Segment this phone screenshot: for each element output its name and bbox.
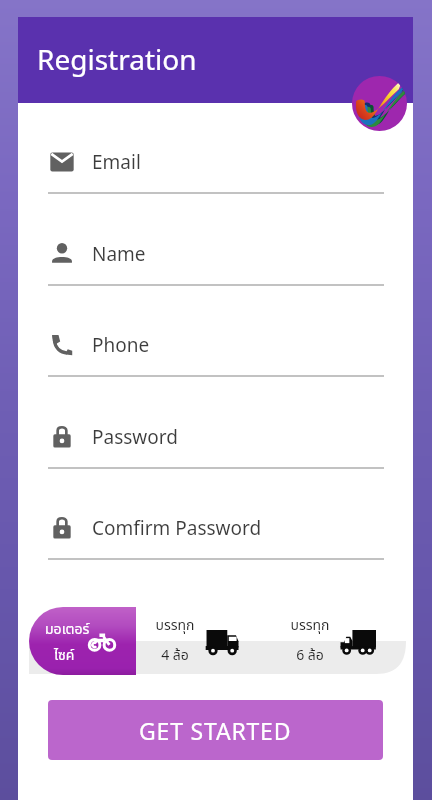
- staticText: Phone: [92, 332, 150, 358]
- button[interactable]: Password: [18, 424, 413, 515]
- staticText: Comfirm Password: [92, 515, 262, 541]
- button[interactable]: Name: [18, 241, 413, 332]
- button[interactable]: มอเตอร์: [29, 607, 136, 675]
- button[interactable]: Email: [18, 149, 413, 240]
- staticText: บรรทุก: [290, 615, 330, 636]
- button[interactable]: บรรทุก: [280, 615, 340, 671]
- button[interactable]: GET STARTED: [48, 700, 383, 760]
- staticText: มอเตอร์: [45, 619, 90, 640]
- staticText: 6 ล้อ: [296, 645, 324, 666]
- button[interactable]: 6 wheel truck: [340, 630, 376, 655]
- staticText: 4 ล้อ: [161, 645, 189, 666]
- staticText: บรรทุก: [155, 615, 195, 636]
- staticText: GET STARTED: [139, 715, 292, 746]
- button[interactable]: 4 wheel truck: [205, 630, 239, 655]
- staticText: Email: [92, 149, 141, 175]
- button[interactable]: Phone: [18, 332, 413, 423]
- staticText: Registration: [37, 40, 197, 78]
- button[interactable]: Comfirm Password: [18, 515, 413, 606]
- button[interactable]: App logo: [352, 76, 407, 131]
- staticText: Name: [92, 241, 146, 267]
- staticText: Password: [92, 424, 178, 450]
- button[interactable]: บรรทุก: [145, 615, 205, 671]
- staticText: ไซค์: [54, 645, 75, 666]
